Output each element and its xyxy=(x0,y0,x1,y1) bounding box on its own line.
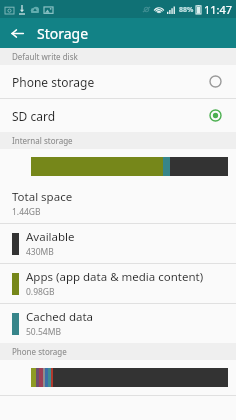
staticText: Total space xyxy=(12,189,73,205)
staticText: Cached data xyxy=(26,309,94,325)
staticText: Internal storage xyxy=(12,135,73,146)
staticText: 11:47 xyxy=(204,2,233,17)
staticText: Apps (app data & media content) xyxy=(26,269,204,285)
staticText: Phone storage xyxy=(12,346,67,357)
staticText: 430MB xyxy=(26,246,54,258)
button[interactable]: Cached data xyxy=(0,304,236,343)
button[interactable]: Total space xyxy=(0,184,236,223)
button[interactable]: Phone storage xyxy=(0,65,236,98)
staticText: Available xyxy=(26,229,75,245)
staticText: 0.98GB xyxy=(26,286,55,298)
staticText: 88% xyxy=(179,5,194,15)
button[interactable]: Apps (app data & media content) xyxy=(0,264,236,303)
staticText: Phone storage xyxy=(12,74,209,90)
button[interactable]: Available xyxy=(0,224,236,263)
staticText: Storage xyxy=(37,24,89,43)
staticText: Default write disk xyxy=(12,51,78,62)
staticText: 50.54MB xyxy=(26,326,61,338)
button[interactable]: SD card xyxy=(0,99,236,132)
staticText: 1.44GB xyxy=(12,206,41,218)
staticText: SD card xyxy=(12,108,209,124)
button[interactable]: Back xyxy=(4,20,30,46)
